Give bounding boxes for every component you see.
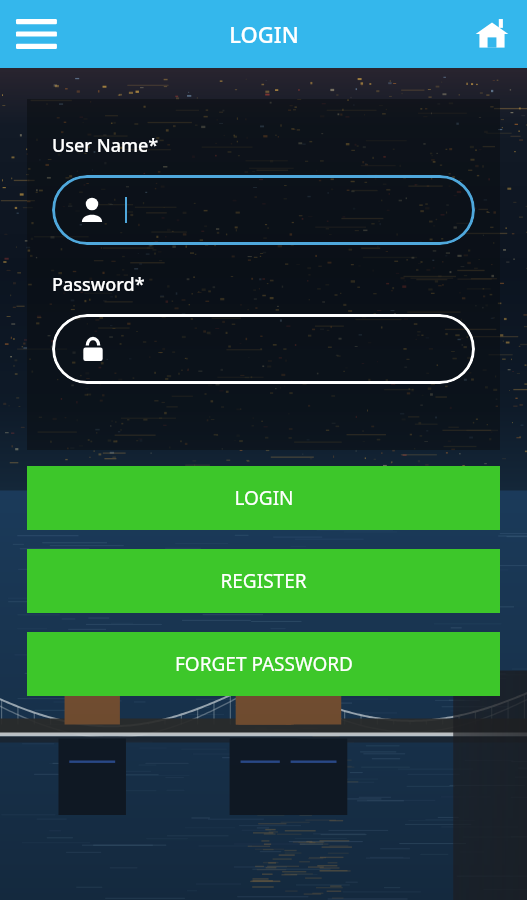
button[interactable]: LOGIN: [27, 466, 500, 530]
button[interactable]: [52, 314, 475, 384]
staticText: REGISTER: [220, 568, 307, 594]
button[interactable]: REGISTER: [27, 549, 500, 613]
staticText: LOGIN: [229, 19, 299, 49]
staticText: LOGIN: [234, 485, 294, 511]
staticText: Password*: [52, 272, 145, 297]
button[interactable]: Open navigation menu: [10, 6, 66, 62]
button[interactable]: [52, 175, 475, 245]
staticText: FORGET PASSWORD: [175, 651, 353, 677]
staticText: User Name*: [52, 133, 159, 158]
button[interactable]: Home: [465, 7, 519, 61]
button[interactable]: FORGET PASSWORD: [27, 632, 500, 696]
